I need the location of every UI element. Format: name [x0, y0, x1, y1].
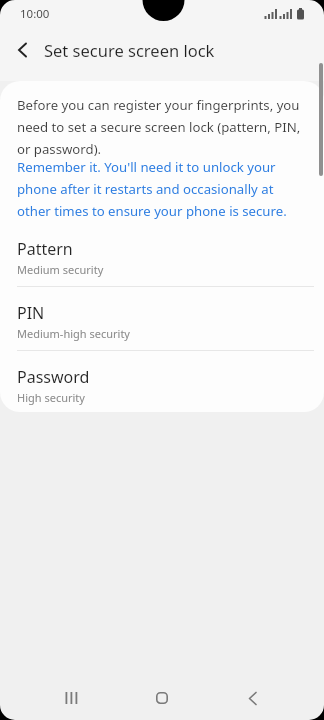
staticText: PIN	[17, 302, 45, 324]
staticText: Pattern	[17, 238, 73, 260]
button[interactable]	[207, 676, 298, 720]
staticText: Set secure screen lock	[44, 39, 215, 61]
button[interactable]	[26, 676, 116, 720]
button[interactable]: Password	[0, 351, 324, 412]
staticText: 10:00	[20, 6, 50, 22]
staticText: Medium security	[17, 262, 104, 277]
button[interactable]	[116, 676, 207, 720]
staticText: Before you can register your fingerprint…	[17, 96, 301, 158]
staticText: Password	[17, 366, 90, 388]
staticText: Remember it. You'll need it to unlock yo…	[17, 158, 287, 220]
staticText: Medium-high security	[17, 326, 130, 341]
button[interactable]: PIN	[0, 287, 324, 350]
staticText: High security	[17, 390, 85, 405]
button[interactable]: Pattern	[0, 223, 324, 286]
button[interactable]	[6, 34, 38, 66]
